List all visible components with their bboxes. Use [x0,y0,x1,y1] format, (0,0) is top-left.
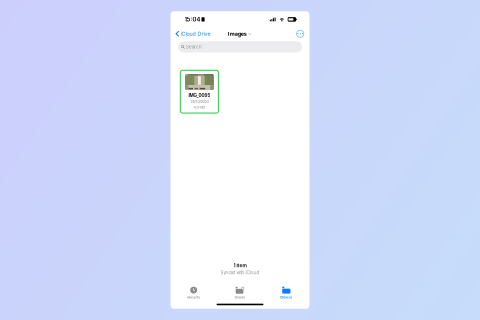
staticText: 4,8 MB [193,105,205,109]
button[interactable]: Shared [217,285,263,301]
staticText: 25/10/2023 [190,99,208,104]
staticText: 1 item [233,263,246,268]
staticText: IMG_0095 [188,92,210,98]
staticText: Search [186,44,202,49]
button[interactable]: Browse [263,285,309,301]
staticText: Shared [234,295,245,299]
button[interactable]: IMG_0095 [180,70,218,113]
button[interactable]: More options [295,29,305,39]
button[interactable]: Search [178,41,302,52]
button[interactable]: iCloud Drive [176,28,212,39]
staticText: 15:04 [184,16,200,23]
staticText: iCloud Drive [180,30,210,37]
staticText: Synced with iCloud [220,270,259,275]
staticText: Recents [187,295,200,299]
staticText: Images [228,30,247,37]
staticText: Browse [280,295,292,299]
button[interactable]: Recents [170,285,217,301]
